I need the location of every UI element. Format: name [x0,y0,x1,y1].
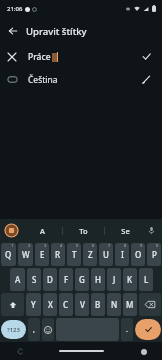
staticText: 6 [92,243,95,248]
button[interactable]: A [22,219,62,242]
button[interactable]: W [18,243,33,266]
staticText: R [55,249,61,260]
staticText: 5 [76,243,79,248]
button[interactable]: Back [0,18,26,44]
staticText: 3 [44,243,47,248]
staticText: U [103,249,109,260]
button[interactable]: G [75,268,89,291]
staticText: W [22,249,30,260]
staticText: N [111,299,118,310]
staticText: E [40,249,45,260]
button[interactable]: C [59,293,73,316]
button[interactable]: F [59,268,73,291]
staticText: Z [88,249,93,260]
button[interactable]: Čeština [0,68,162,91]
button[interactable]: Edit [134,68,158,91]
button[interactable]: U [99,243,113,266]
staticText: 8 [124,243,127,248]
button[interactable]: Voice input [145,224,158,237]
button[interactable]: . [121,318,133,341]
staticText: J [113,274,116,285]
button[interactable]: Z [83,243,97,266]
button[interactable]: Backspace [139,293,161,316]
button[interactable]: To [63,219,104,242]
button[interactable]: M [123,293,137,316]
staticText: . [126,325,128,335]
button[interactable]: T [67,243,81,266]
staticText: C [63,299,69,310]
staticText: Práce [28,51,51,63]
button[interactable]: Clear [0,45,24,68]
button[interactable]: Back [16,347,24,355]
staticText: S [32,274,37,285]
staticText: I [121,249,124,260]
staticText: D [47,274,53,285]
button[interactable]: D [43,268,57,291]
button[interactable]: A [10,268,25,291]
staticText: A [40,226,45,236]
button[interactable]: Clear [0,45,162,68]
staticText: Se [121,226,130,236]
button[interactable]: P [147,243,161,266]
staticText: H [95,274,101,285]
staticText: ?123 [7,326,20,334]
staticText: A [15,274,21,285]
button[interactable]: Shift [1,293,24,316]
button[interactable]: Keyboard settings [5,224,18,237]
staticText: Čeština [28,74,58,86]
button[interactable]: ?123 [1,320,26,339]
staticText: B [95,299,101,310]
staticText: M [126,299,134,310]
staticText: F [64,274,69,285]
button[interactable]: Q [1,243,16,266]
staticText: Upravit štítky [26,25,87,38]
button[interactable]: X [43,293,57,316]
button[interactable]: J [107,268,121,291]
staticText: 2 [28,243,31,248]
staticText: G [79,274,85,285]
staticText: X [48,299,53,310]
button[interactable]: K [123,268,137,291]
staticText: , [33,325,35,335]
button[interactable]: Se [105,219,146,242]
button[interactable]: O [131,243,145,266]
button[interactable]: B [91,293,105,316]
button[interactable]: Emoji [42,318,54,341]
staticText: Y [31,299,36,310]
staticText: P [152,249,157,260]
button[interactable]: Recents [139,347,148,356]
button[interactable]: L [139,268,153,291]
staticText: 4 [60,243,63,248]
button[interactable]: V [75,293,89,316]
staticText: To [79,226,88,236]
button[interactable]: , [28,318,40,341]
staticText: O [135,249,142,260]
staticText: L [144,274,149,285]
staticText: 7 [108,243,111,248]
button[interactable]: H [91,268,105,291]
staticText: K [127,274,133,285]
button[interactable]: Y [26,293,41,316]
button[interactable]: I [115,243,129,266]
button[interactable]: Enter [135,319,161,340]
staticText: T [72,249,77,260]
button[interactable]: R [51,243,65,266]
staticText: 21:06 [7,5,23,13]
staticText: 9 [140,243,143,248]
staticText: 1 [11,243,14,248]
staticText: Q [5,249,12,260]
button[interactable]: Home [59,350,104,352]
staticText: V [80,299,85,310]
button[interactable]: S [27,268,41,291]
button[interactable]: Confirm [134,45,158,68]
staticText: 0 [156,243,159,248]
button[interactable]: E [35,243,49,266]
button[interactable]: N [107,293,121,316]
